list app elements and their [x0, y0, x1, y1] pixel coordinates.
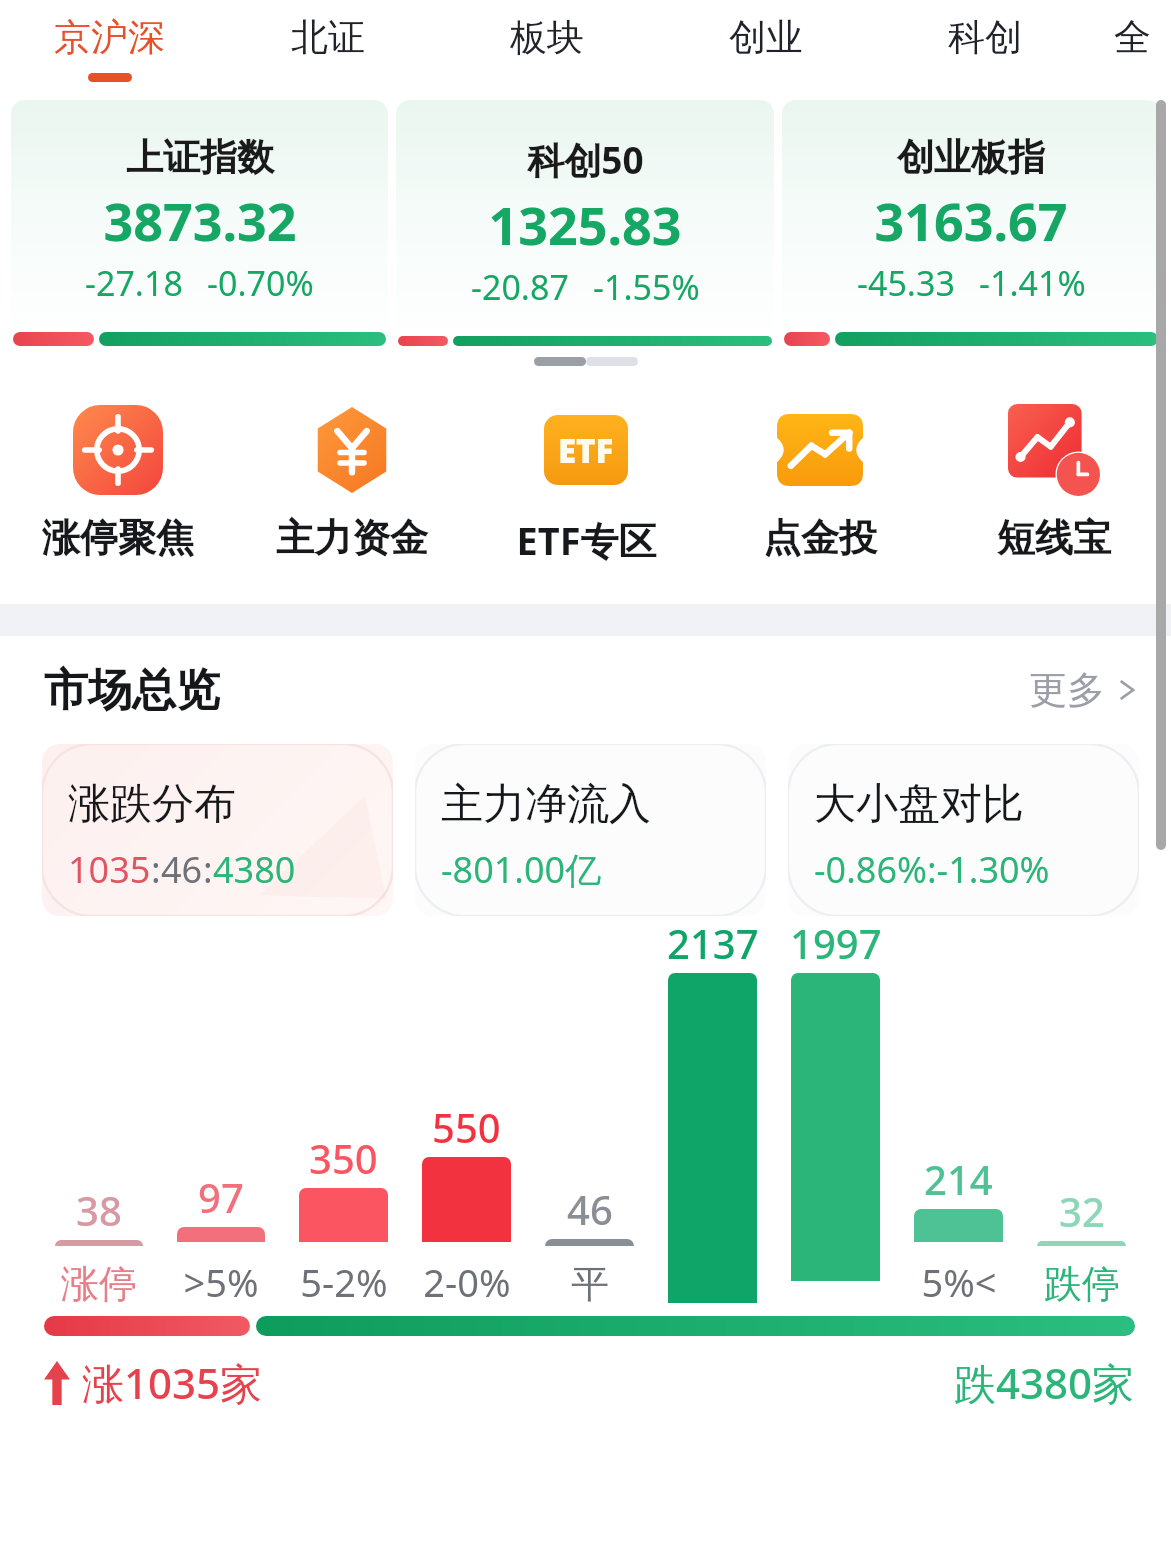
staticText: 北证 [291, 14, 365, 61]
staticText: 550 [432, 1100, 501, 1154]
staticText: -1.55% [593, 264, 700, 310]
staticText: 创业板指 [897, 134, 1045, 181]
button[interactable]: 科创50 [396, 100, 774, 346]
staticText: 3163.67 [874, 185, 1068, 256]
button[interactable]: 全 [1094, 0, 1171, 100]
staticText: 跌停 [1044, 1260, 1120, 1308]
staticText: 短线宝 [997, 514, 1111, 562]
staticText: 4380 [213, 845, 296, 894]
staticText: 涨停聚焦 [42, 514, 194, 562]
staticText: : [203, 845, 213, 894]
staticText: 350 [309, 1131, 378, 1185]
staticText: 全 [1114, 14, 1151, 61]
staticText: -45.33 [857, 260, 955, 306]
staticText: 更多 [1029, 666, 1105, 714]
staticText: 214 [924, 1152, 993, 1206]
staticText: 科创 [948, 14, 1022, 61]
button[interactable]: 短线宝 [937, 402, 1171, 562]
staticText: -20.87 [471, 264, 569, 310]
staticText: 平 [571, 1260, 609, 1308]
button[interactable]: 京沪深 [0, 0, 218, 100]
staticText: 科创50 [527, 134, 644, 185]
staticText: 46 [567, 1182, 613, 1236]
staticText: 涨停 [61, 1260, 137, 1308]
button[interactable]: 板块 [437, 0, 656, 100]
button[interactable]: 涨停聚焦 [0, 402, 235, 562]
button[interactable]: ETF [469, 402, 703, 566]
button[interactable]: 主力资金 [235, 402, 469, 562]
staticText: 2-0% [423, 1256, 511, 1308]
staticText: -27.18 [85, 260, 183, 306]
button[interactable]: 大小盘对比 [788, 744, 1139, 916]
staticText: 涨跌分布 [68, 778, 236, 831]
staticText: -0.86%:-1.30% [814, 845, 1050, 894]
staticText: 涨1035家 [82, 1354, 263, 1411]
staticText: 创业 [729, 14, 803, 61]
button[interactable]: 北证 [218, 0, 437, 100]
button[interactable]: 上证指数 [11, 100, 388, 346]
button[interactable]: 点金投 [703, 402, 937, 562]
staticText: 点金投 [763, 514, 877, 562]
staticText: 97 [198, 1170, 244, 1224]
staticText: -0.70% [207, 260, 314, 306]
staticText: 1035 [68, 845, 151, 894]
button[interactable]: 科创 [875, 0, 1094, 100]
staticText: : [151, 845, 161, 894]
staticText: 京沪深 [54, 14, 165, 61]
staticText: 1325.83 [488, 189, 682, 260]
staticText: 5%< [921, 1256, 997, 1308]
staticText: 2137 [667, 916, 759, 970]
staticText: 主力资金 [276, 514, 428, 562]
staticText: 上证指数 [126, 134, 274, 181]
button[interactable]: 主力净流入 [415, 744, 766, 916]
staticText: 5-2% [300, 1256, 388, 1308]
staticText: 38 [76, 1183, 122, 1237]
staticText: 1997 [790, 916, 882, 970]
button[interactable]: 创业板指 [782, 100, 1160, 346]
staticText: 板块 [510, 14, 584, 61]
staticText: 市场总览 [44, 663, 220, 718]
staticText: 跌4380家 [954, 1354, 1135, 1411]
staticText: 主力净流入 [441, 778, 651, 831]
button[interactable]: 涨跌分布 [42, 744, 393, 916]
staticText: 46 [161, 845, 203, 894]
staticText: ETF [558, 428, 614, 473]
staticText: -1.41% [979, 260, 1086, 306]
staticText: >5% [183, 1256, 259, 1308]
staticText: 32 [1059, 1184, 1105, 1238]
staticText: 3873.32 [103, 185, 297, 256]
button[interactable]: 更多 [1029, 666, 1141, 714]
staticText: -801.00亿 [441, 845, 602, 894]
button[interactable]: 创业 [656, 0, 875, 100]
staticText: ETF专区 [516, 514, 657, 566]
staticText: 大小盘对比 [814, 778, 1024, 831]
